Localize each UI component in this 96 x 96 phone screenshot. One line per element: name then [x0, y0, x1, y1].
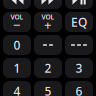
button[interactable]: 1 — [3, 58, 31, 78]
staticText: + — [44, 16, 52, 33]
staticText: 5 — [44, 83, 51, 96]
button[interactable]: EQ — [65, 12, 93, 32]
staticText: 4 — [13, 83, 20, 96]
button[interactable]: 2 — [34, 58, 62, 78]
button[interactable]: VOL — [34, 12, 62, 32]
staticText: 6 — [75, 83, 82, 96]
button[interactable]: 6 — [65, 81, 93, 96]
staticText: VOL — [10, 13, 23, 21]
staticText: 0 — [13, 37, 20, 53]
button[interactable]: 3 — [65, 58, 93, 78]
button[interactable]: Triple dash — [65, 35, 93, 55]
button[interactable]: 4 — [3, 81, 31, 96]
button[interactable]: Fast forward — [34, 0, 62, 9]
staticText: 1 — [13, 60, 20, 76]
staticText: − — [13, 16, 21, 33]
staticText: VOL — [41, 13, 54, 21]
button[interactable]: 5 — [34, 81, 62, 96]
button[interactable]: Play or pause — [65, 0, 93, 9]
button[interactable]: VOL — [3, 12, 31, 32]
staticText: 3 — [75, 60, 82, 76]
staticText: 2 — [44, 60, 51, 76]
button[interactable]: Rewind — [3, 0, 31, 9]
staticText: EQ — [71, 14, 87, 30]
button[interactable]: 0 — [3, 35, 31, 55]
button[interactable]: Double dash — [34, 35, 62, 55]
